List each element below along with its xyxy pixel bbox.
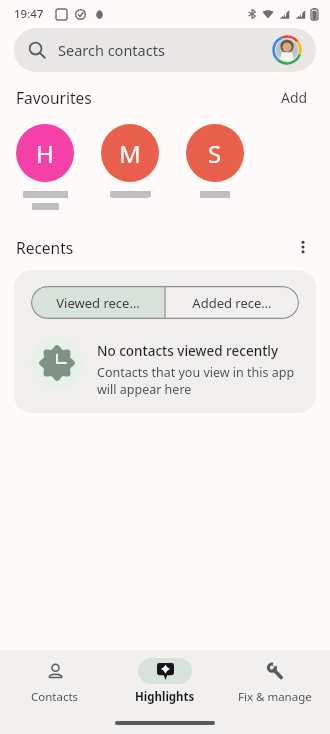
staticText: Viewed rece… [56,294,140,312]
button[interactable]: M [101,124,159,198]
staticText: Add [281,88,308,107]
staticText: M [119,137,141,170]
staticText: S [208,137,222,170]
button[interactable]: Highlights [110,650,220,712]
staticText: No contacts viewed recently [97,342,279,360]
staticText: Fix & manage [238,689,312,705]
staticText: Added rece… [192,294,272,312]
staticText: Search contacts [58,40,165,60]
staticText: Contacts [31,689,79,705]
button[interactable]: Contacts [0,650,110,712]
button[interactable]: Account [272,35,302,65]
staticText: H [36,137,54,170]
button[interactable]: S [186,124,244,198]
button[interactable]: Add [275,84,314,111]
staticText: Recents [16,237,74,258]
button[interactable]: Added rece… [165,286,299,319]
staticText: Favourites [16,87,92,108]
staticText: 19:47 [14,6,44,22]
button[interactable]: More options [288,232,318,262]
staticText: Highlights [135,689,195,705]
button[interactable]: Fix & manage [220,650,330,712]
staticText: Contacts that you view in this app will … [97,364,295,397]
button[interactable]: Search contacts [14,28,316,72]
button[interactable]: Viewed rece… [31,286,165,319]
button[interactable]: H [16,124,74,210]
